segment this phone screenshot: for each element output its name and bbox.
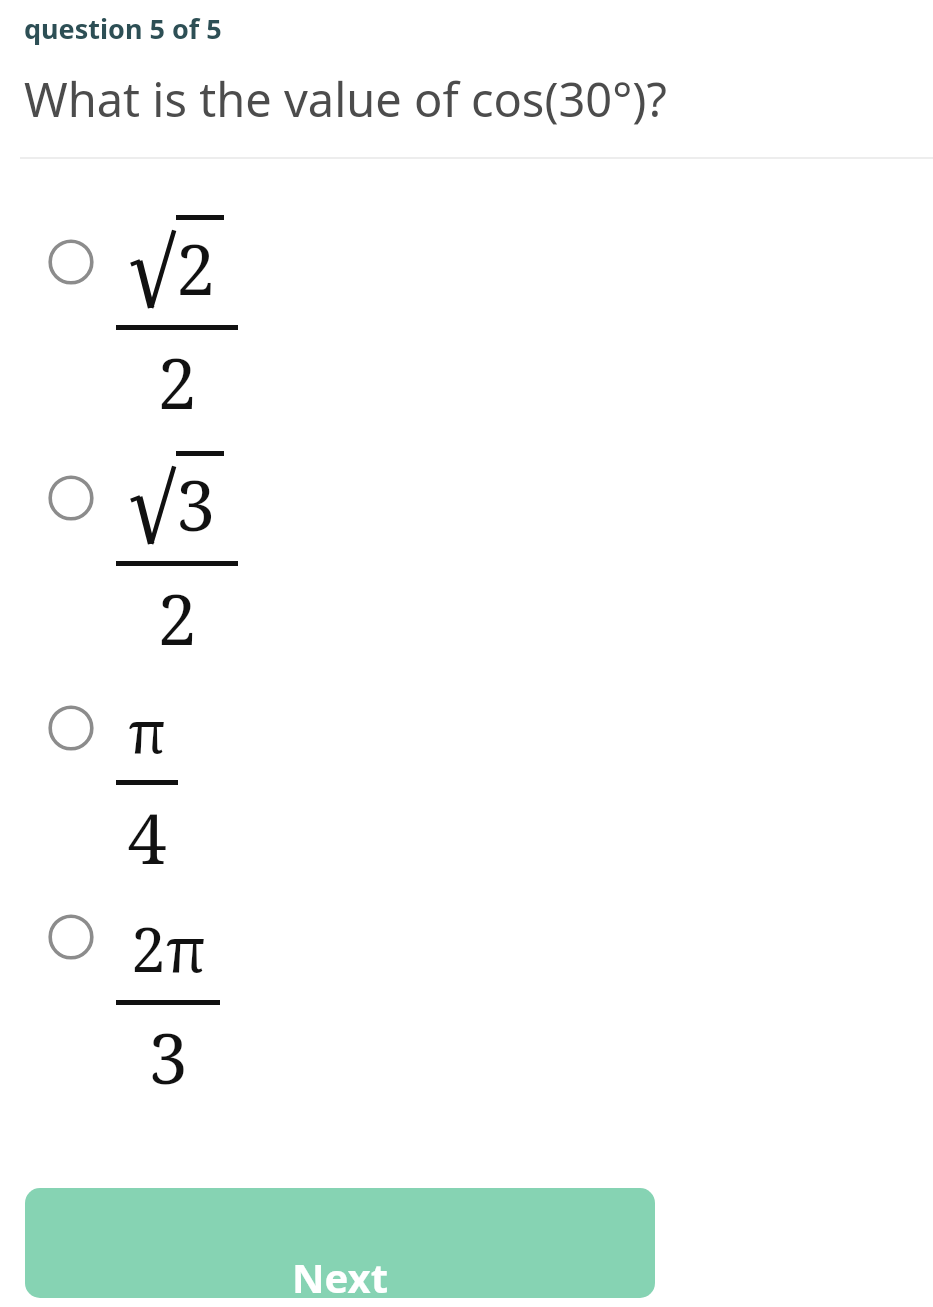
staticText: What is the value of cos(30°)? bbox=[24, 67, 667, 131]
staticText: 2π bbox=[131, 906, 206, 990]
staticText: 2 bbox=[157, 570, 197, 665]
staticText: 3 bbox=[176, 456, 216, 551]
button[interactable]: Option 2 pi over 3 bbox=[0, 884, 933, 1104]
button[interactable]: Next bbox=[25, 1188, 655, 1298]
staticText: 2 bbox=[176, 220, 216, 315]
staticText: question 5 of 5 bbox=[24, 10, 222, 47]
staticText: π bbox=[128, 691, 166, 770]
button[interactable]: Option square root of 3 over 2 bbox=[0, 429, 933, 665]
button[interactable]: Option square root of 2 over 2 bbox=[0, 159, 933, 429]
button[interactable]: Option pi over 4 bbox=[0, 665, 933, 884]
staticText: Next bbox=[292, 1250, 389, 1298]
staticText: 3 bbox=[148, 1009, 188, 1104]
staticText: 4 bbox=[127, 789, 167, 884]
staticText: 2 bbox=[157, 334, 197, 429]
